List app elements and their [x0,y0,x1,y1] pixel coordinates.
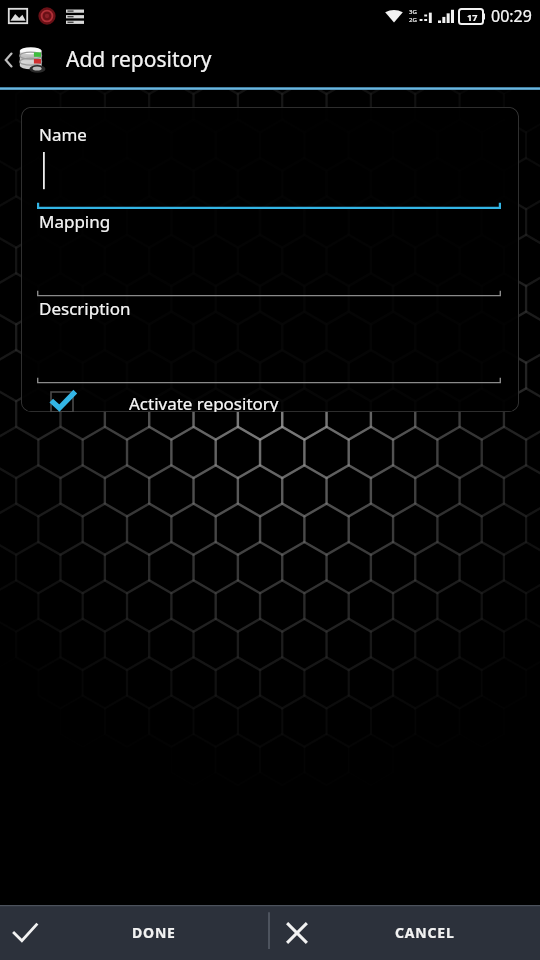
button[interactable]: Activate repository [33,392,505,412]
button[interactable]: Mapping [33,210,505,297]
staticText: CANCEL [395,923,455,942]
button[interactable]: CANCEL [270,905,540,960]
button[interactable]: Navigate up [0,32,52,87]
staticText: DONE [132,923,176,942]
staticText: Description [39,297,131,320]
staticText: Add repository [66,45,212,74]
button[interactable]: Name [33,123,505,210]
button[interactable]: DONE [0,905,269,960]
staticText: 00:29 [491,5,532,27]
staticText: Name [39,123,87,146]
staticText: 2G [409,16,417,24]
staticText: Mapping [39,210,111,233]
staticText: 17 [467,11,478,23]
staticText: 3G [409,8,417,16]
button[interactable]: Description [33,297,505,384]
staticText: Activate repository [129,392,279,412]
